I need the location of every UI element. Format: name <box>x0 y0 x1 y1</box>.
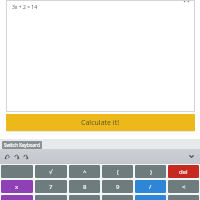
button[interactable]: > <box>168 195 199 200</box>
staticText: ^ <box>83 168 87 176</box>
button[interactable]: * <box>135 195 166 200</box>
staticText: solve 3x+2=14 <box>12 0 46 3</box>
staticText: ( <box>117 168 119 176</box>
button[interactable]: 9 <box>102 180 133 193</box>
button[interactable]: ( <box>102 165 133 178</box>
button[interactable]: 7 <box>35 180 67 193</box>
button[interactable]: Clear input <box>181 0 192 5</box>
staticText: 7 <box>49 183 53 191</box>
button[interactable]: 5 <box>69 195 100 200</box>
button[interactable] <box>1 165 33 178</box>
button[interactable]: Undo <box>3 152 12 161</box>
staticText: < <box>182 183 186 191</box>
button[interactable]: y <box>1 195 33 200</box>
button[interactable]: Calculate it! <box>6 114 195 131</box>
staticText: / <box>149 183 152 191</box>
staticText: del <box>179 168 188 176</box>
button[interactable]: Redo <box>12 152 21 161</box>
button[interactable]: 8 <box>69 180 100 193</box>
button[interactable]: 6 <box>102 195 133 200</box>
staticText: Calculate it! <box>81 118 120 128</box>
button[interactable]: del <box>168 165 199 178</box>
staticText: ) <box>150 168 152 176</box>
button[interactable]: / <box>135 180 166 193</box>
button[interactable]: ) <box>135 165 166 178</box>
button[interactable]: x <box>1 180 33 193</box>
button[interactable]: < <box>168 180 199 193</box>
button[interactable]: 4 <box>35 195 67 200</box>
button[interactable]: Hide keyboard <box>187 152 196 161</box>
button[interactable]: ^ <box>69 165 100 178</box>
button[interactable]: Switch Keyboard <box>2 141 42 149</box>
staticText: Switch Keyboard <box>4 142 40 148</box>
staticText: √ <box>49 168 53 175</box>
staticText: 9 <box>116 183 120 191</box>
staticText: x <box>15 183 19 191</box>
button[interactable]: Reset <box>21 152 30 161</box>
staticText: 3x + 2 = 14 <box>12 4 38 11</box>
staticText: 8 <box>83 183 87 191</box>
button[interactable]: √ <box>35 165 67 178</box>
